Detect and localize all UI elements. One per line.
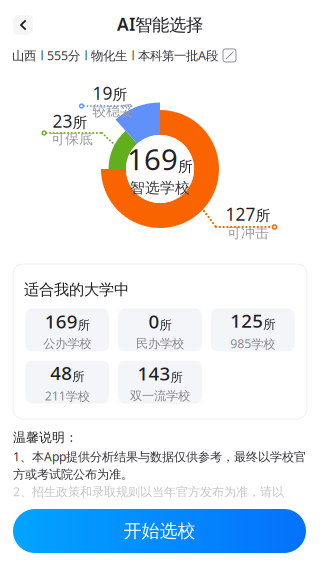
button[interactable]: 开始选校 <box>13 509 306 553</box>
staticText: 双一流学校 <box>130 388 190 404</box>
staticText: 169 <box>45 308 78 334</box>
staticText: 985学校 <box>230 335 275 352</box>
staticText: 211学校 <box>45 387 90 404</box>
staticText: 所 <box>159 317 171 333</box>
staticText: 开始选校 <box>123 520 195 542</box>
staticText: 适合我的大学中 <box>24 280 129 299</box>
staticText: 所 <box>178 157 193 176</box>
staticText: 可冲击 <box>227 224 269 242</box>
staticText: 较稳妥 <box>92 102 134 120</box>
staticText: 48 <box>50 360 72 385</box>
staticText: 所 <box>170 370 182 385</box>
staticText: 方或考试院公布为准。 <box>13 467 133 482</box>
staticText: 所 <box>255 206 270 225</box>
staticText: 19 <box>92 81 112 105</box>
staticText: 所 <box>263 317 275 332</box>
staticText: 0 <box>148 308 159 334</box>
button[interactable]: Back <box>13 15 33 35</box>
staticText: 169 <box>127 139 178 179</box>
staticText: 智选学校 <box>130 179 190 197</box>
staticText: 1、本App提供分析结果与数据仅供参考，最终以学校官 <box>13 448 306 465</box>
staticText: 山西 ǀ 555分 ǀ 物化生 ǀ 本科第一批A段 <box>12 47 218 64</box>
staticText: 可保底 <box>51 130 93 148</box>
staticText: AI智能选择 <box>117 12 203 36</box>
staticText: 民办学校 <box>136 336 184 351</box>
staticText: 公办学校 <box>43 336 91 351</box>
staticText: 125 <box>230 308 263 333</box>
staticText: 所 <box>78 317 90 333</box>
staticText: 143 <box>137 361 170 386</box>
staticText: 2、招生政策和录取规则以当年官方发布为准，请以 <box>13 483 284 500</box>
staticText: 所 <box>112 85 127 104</box>
staticText: 温馨说明： <box>13 429 78 445</box>
staticText: 23 <box>52 109 72 133</box>
staticText: 所 <box>72 113 87 132</box>
staticText: 所 <box>72 369 84 384</box>
staticText: 127 <box>225 202 255 226</box>
